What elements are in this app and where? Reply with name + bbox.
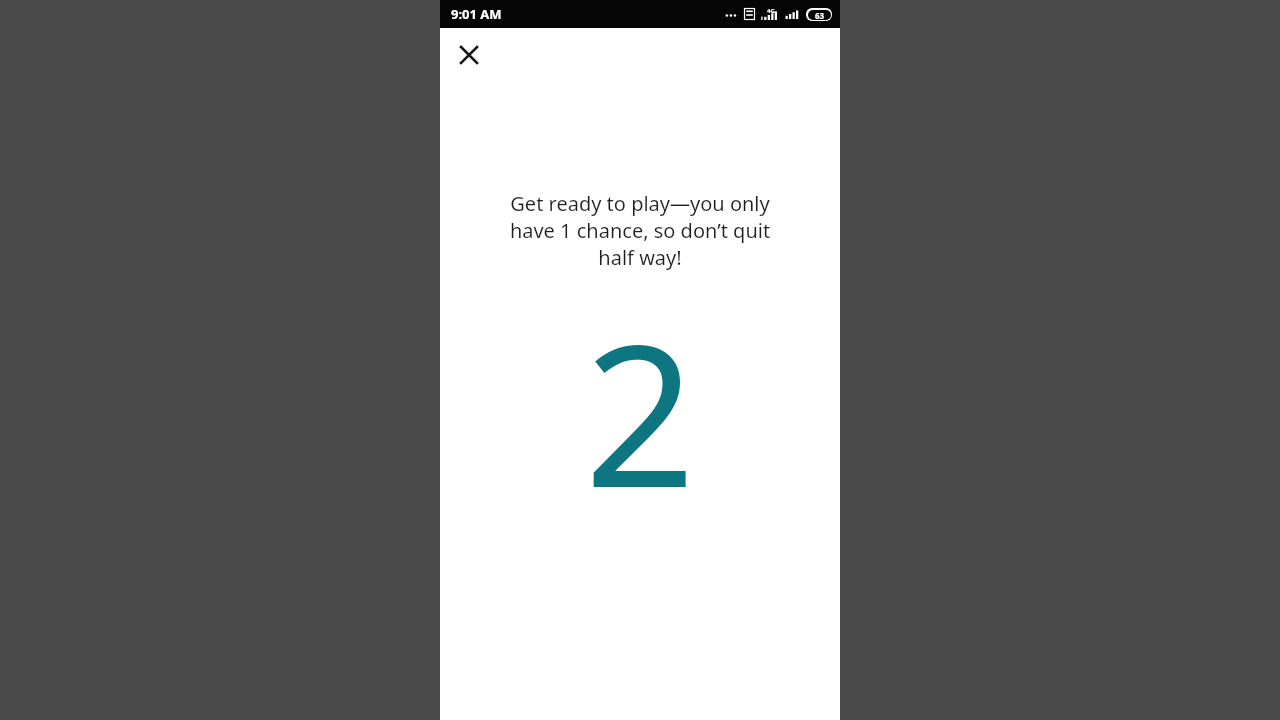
button[interactable]: Close <box>449 35 489 75</box>
staticText: 2 <box>584 279 696 545</box>
staticText: 4G <box>767 7 775 15</box>
staticText: 9:01 AM <box>451 5 502 23</box>
staticText: 63 <box>815 10 825 20</box>
staticText: Get ready to play—you only have 1 chance… <box>490 190 790 271</box>
